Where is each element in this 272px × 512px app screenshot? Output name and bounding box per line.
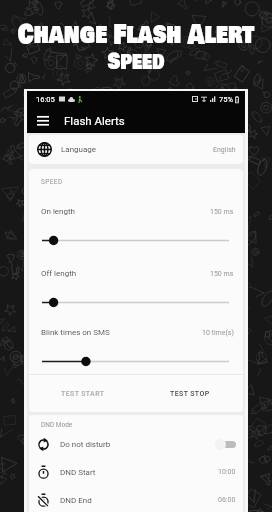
staticText: SPEED bbox=[41, 178, 63, 186]
button[interactable]: DND Start bbox=[29, 458, 243, 486]
staticText: Off length bbox=[41, 269, 77, 278]
staticText: English bbox=[213, 146, 236, 154]
staticText: Speed bbox=[107, 45, 165, 79]
button[interactable]: TEST STOP bbox=[136, 375, 243, 412]
button[interactable]: Open navigation menu bbox=[34, 111, 52, 129]
staticText: 10 time(s) bbox=[202, 329, 234, 337]
button[interactable]: On length slider bbox=[29, 235, 243, 246]
staticText: 06:00 bbox=[218, 496, 236, 504]
button[interactable]: Off length slider bbox=[29, 297, 243, 308]
staticText: 75% bbox=[219, 95, 233, 104]
staticText: Flash Alerts bbox=[64, 114, 125, 127]
button[interactable]: Do not disturb toggle bbox=[215, 438, 236, 451]
button[interactable]: Language bbox=[29, 135, 243, 164]
staticText: 16:05 bbox=[36, 95, 55, 104]
staticText: 150 ms bbox=[210, 208, 234, 216]
button[interactable]: DND End bbox=[29, 486, 243, 512]
button[interactable]: TEST START bbox=[29, 375, 136, 412]
staticText: DND End bbox=[60, 496, 92, 505]
staticText: 150 ms bbox=[210, 270, 234, 278]
staticText: DND Mode bbox=[41, 421, 73, 429]
staticText: Do not disturb bbox=[60, 440, 111, 449]
staticText: Blink times on SMS bbox=[41, 328, 110, 337]
staticText: 10:00 bbox=[218, 468, 236, 476]
staticText: Language bbox=[61, 145, 97, 154]
staticText: TEST START bbox=[61, 390, 105, 398]
button[interactable]: Do not disturb bbox=[29, 430, 243, 458]
staticText: TEST STOP bbox=[170, 390, 210, 398]
button[interactable]: Blink times on SMS slider bbox=[29, 356, 243, 367]
staticText: DND Start bbox=[60, 468, 96, 477]
staticText: On length bbox=[41, 207, 76, 216]
staticText: Change Flash Alert bbox=[18, 15, 254, 55]
